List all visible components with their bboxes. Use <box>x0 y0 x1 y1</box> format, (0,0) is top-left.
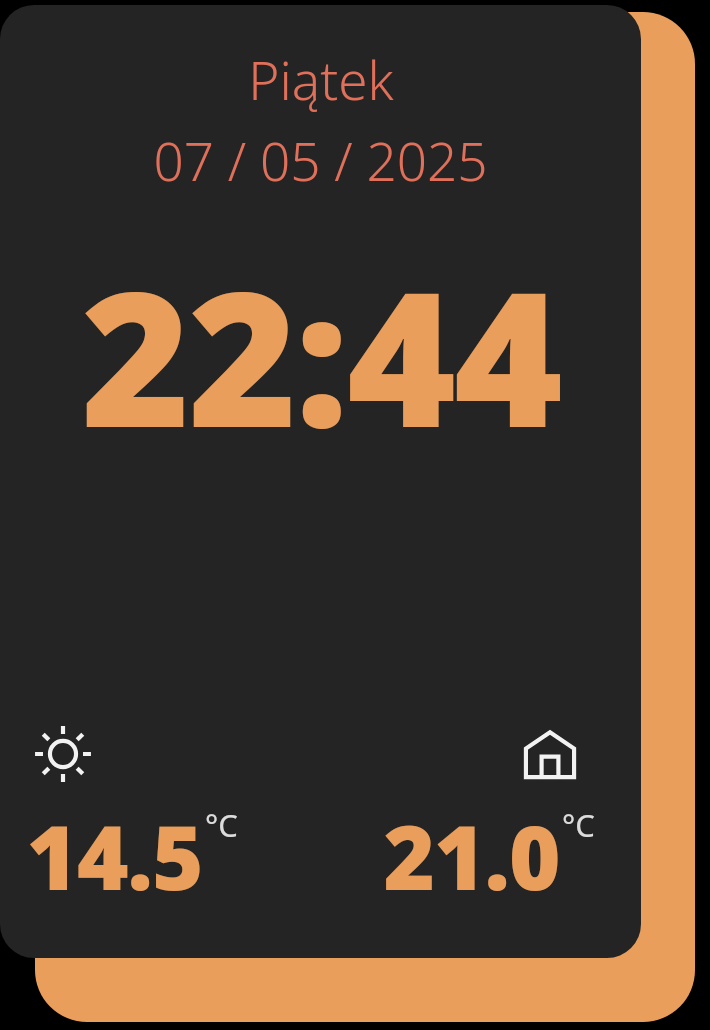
button[interactable]: Home indoor temperature <box>310 725 595 916</box>
button[interactable]: 07 / 05 / 2025 <box>0 124 641 196</box>
button[interactable]: Weather, sunny <box>26 725 310 916</box>
button[interactable]: Piątek <box>0 43 641 115</box>
button[interactable]: 22:44 <box>0 228 641 481</box>
other: Weather, sunny <box>34 725 92 783</box>
staticText: 22:44 <box>81 228 561 481</box>
staticText: 07 / 05 / 2025 <box>153 124 488 196</box>
staticText: 21.0 <box>383 796 560 916</box>
other: Home indoor temperature <box>521 725 579 783</box>
staticText: Piątek <box>248 43 394 115</box>
staticText: 14.5 <box>26 796 203 916</box>
staticText: °C <box>562 804 595 846</box>
staticText: °C <box>205 804 238 846</box>
button[interactable]: Piątek <box>0 5 641 958</box>
